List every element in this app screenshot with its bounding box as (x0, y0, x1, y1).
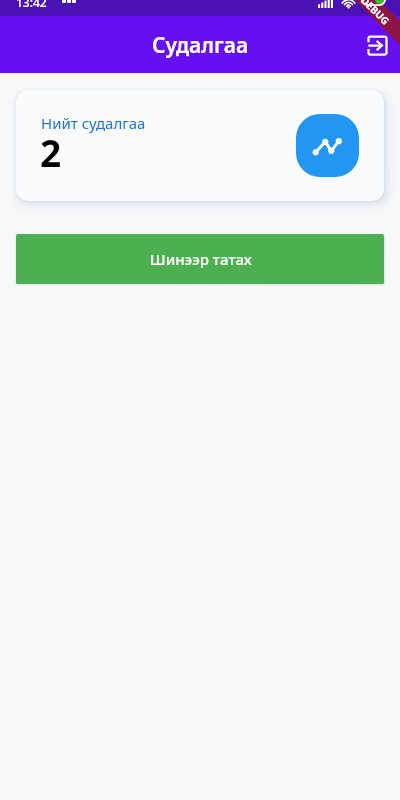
button[interactable]: Шинээр татах (16, 234, 384, 284)
staticText: 13:42 (16, 0, 47, 10)
staticText: DEBUG (358, 0, 393, 28)
staticText: 2 (40, 127, 62, 177)
button[interactable]: Нийт судалгаа (16, 90, 384, 201)
button[interactable]: Logout (351, 21, 399, 69)
staticText: Шинээр татах (150, 249, 252, 269)
staticText: Нийт судалгаа (41, 113, 146, 133)
staticText: Судалгаа (152, 31, 249, 60)
